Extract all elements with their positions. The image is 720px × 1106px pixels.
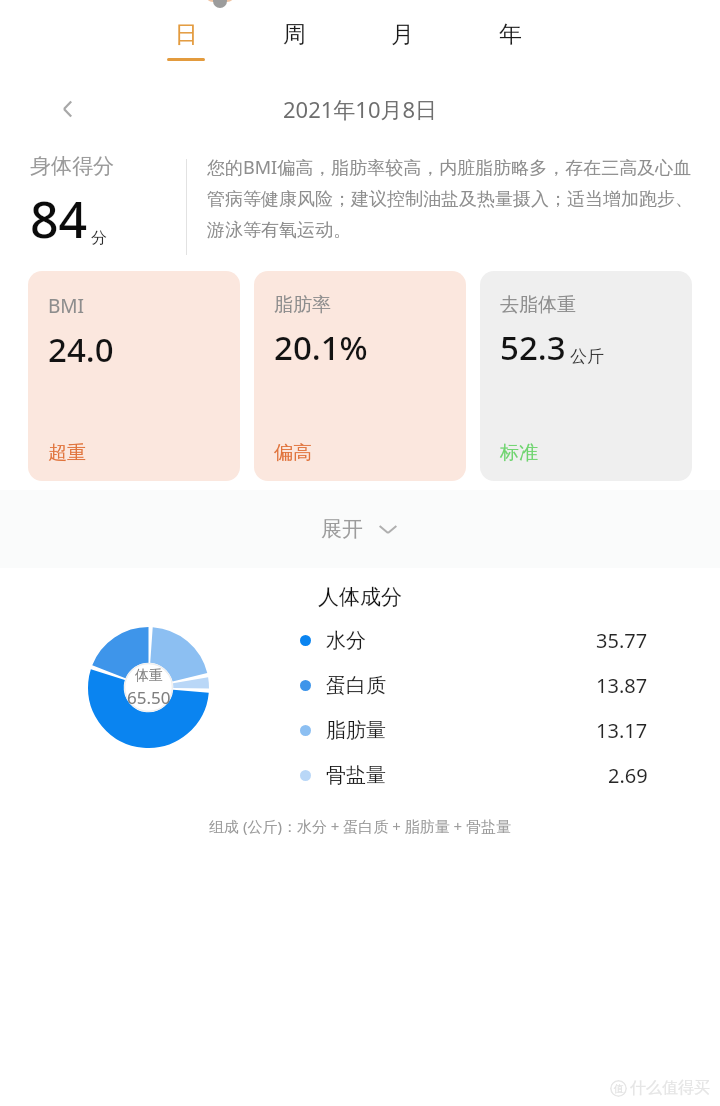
staticText: 13.87 [596,672,648,699]
staticText: 周 [283,20,306,49]
staticText: 值 [614,1082,624,1095]
staticText: 去脂体重 [500,293,576,317]
staticText: 脂肪量 [326,718,386,743]
staticText: 35.77 [596,627,648,654]
staticText: 什么值得买 [630,1078,710,1098]
button[interactable]: 骨盐量 [300,762,720,789]
button[interactable]: 水分 [300,627,720,654]
button[interactable]: Previous day [46,89,90,129]
staticText: 13.17 [596,717,648,744]
staticText: 展开 [321,516,363,542]
staticText: 2.69 [608,762,648,789]
staticText: 月 [391,20,414,49]
staticText: 2021年10月8日 [283,94,438,124]
staticText: 年 [499,20,522,49]
staticText: 脂肪率 [274,293,331,317]
staticText: 您的BMI偏高，脂肪率较高，内脏脂肪略多，存在三高及心血管病等健康风险；建议控制… [207,155,696,241]
staticText: 人体成分 [0,584,720,610]
staticText: 24.0 [48,327,114,372]
button[interactable]: 周 [258,16,330,58]
staticText: 84 [30,185,88,253]
staticText: 分 [91,228,107,248]
staticText: 偏高 [274,441,312,465]
staticText: 标准 [500,441,538,465]
button[interactable]: 脂肪量 [300,717,720,744]
staticText: 20.1% [274,325,368,370]
button[interactable]: 去脂体重 [480,271,692,481]
staticText: 蛋白质 [326,673,386,698]
staticText: 身体得分 [30,153,114,179]
staticText: 65.50 [127,686,171,709]
staticText: 水分 [326,628,366,653]
button[interactable]: 日 [150,16,222,61]
staticText: 组成 (公斤)：水分 + 蛋白质 + 脂肪量 + 骨盐量 [0,816,720,836]
staticText: 公斤 [570,346,604,367]
button[interactable]: BMI [28,271,240,481]
button[interactable]: 月 [366,16,438,58]
button[interactable]: 展开 [0,490,720,568]
button[interactable]: 脂肪率 [254,271,466,481]
button[interactable]: 年 [474,16,546,58]
staticText: 52.3 [500,325,566,370]
staticText: 超重 [48,441,86,465]
button[interactable]: 蛋白质 [300,672,720,699]
staticText: 日 [175,20,198,49]
staticText: BMI [48,293,85,319]
staticText: 体重 [135,667,163,685]
staticText: 骨盐量 [326,763,386,788]
